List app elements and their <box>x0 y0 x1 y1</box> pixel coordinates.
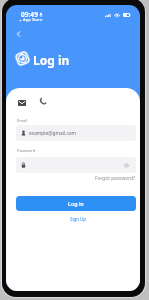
button[interactable]: Forgot password? <box>86 174 135 182</box>
staticText: Log in <box>33 52 70 68</box>
staticText: App Store <box>23 17 43 23</box>
button[interactable]: example@gmail.com <box>16 125 136 141</box>
staticText: Email <box>17 118 28 123</box>
staticText: 09:49 <box>21 10 38 19</box>
staticText: Log in <box>68 200 84 207</box>
staticText: Password <box>17 148 36 153</box>
button[interactable]: Back <box>12 27 25 40</box>
staticText: example@gmail.com <box>29 130 77 137</box>
button[interactable]: Sign Up <box>63 214 93 223</box>
button[interactable]: Log in <box>16 196 136 211</box>
button[interactable]: Email login <box>15 96 28 109</box>
staticText: Sign Up <box>70 216 87 222</box>
button[interactable]: Show password <box>16 157 136 173</box>
other: Show password <box>124 164 129 167</box>
button[interactable]: Phone login <box>36 95 49 108</box>
staticText: Forgot password? <box>95 175 135 182</box>
